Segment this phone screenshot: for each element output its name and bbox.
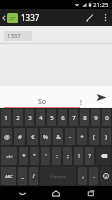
button[interactable]: Send [90, 86, 112, 108]
staticText: 1337 [7, 32, 21, 40]
staticText: 3 [28, 114, 32, 122]
button[interactable]: =\< [1, 147, 17, 165]
staticText: ! [78, 152, 80, 160]
staticText: + [80, 133, 84, 141]
staticText: 4 [39, 114, 43, 122]
staticText: 1337 [21, 12, 40, 23]
button[interactable]: . [89, 167, 98, 185]
staticText: ; [67, 152, 69, 160]
button[interactable]: 1337 [4, 31, 32, 41]
button[interactable]: Navigate up [0, 9, 19, 26]
button[interactable]: 8 [80, 109, 89, 126]
staticText: 6 [61, 114, 65, 122]
staticText: ' [45, 152, 47, 160]
staticText: , [82, 172, 84, 180]
button[interactable]: ) [101, 128, 111, 145]
button[interactable]: @ [1, 128, 12, 145]
staticText: . [93, 172, 95, 180]
button[interactable]: ! [74, 147, 83, 165]
button[interactable]: 7 [69, 109, 78, 126]
staticText: ) [105, 133, 107, 141]
button[interactable]: Attach [81, 9, 99, 26]
button[interactable]: , [78, 167, 87, 185]
button[interactable]: 9 [91, 109, 100, 126]
staticText: 8 [83, 114, 87, 122]
staticText: @ [4, 133, 10, 141]
staticText: - [69, 133, 71, 141]
staticText: 0 [105, 114, 109, 122]
button[interactable]: Home [43, 186, 69, 200]
button[interactable]: ABC [1, 167, 16, 185]
button[interactable]: ? [85, 147, 94, 165]
button[interactable]: / [29, 167, 38, 185]
button[interactable]: : [52, 147, 61, 165]
button[interactable]: + [77, 128, 87, 145]
button[interactable]: 0 [102, 109, 111, 126]
staticText: 1 [4, 114, 8, 122]
staticText: " [33, 152, 36, 160]
button[interactable]: # [14, 128, 25, 145]
button[interactable]: € [27, 128, 38, 145]
button[interactable]: 1 [1, 109, 11, 126]
button[interactable]: ; [63, 147, 72, 165]
button[interactable]: " [30, 147, 39, 165]
staticText: _ [21, 172, 24, 180]
button[interactable]: More options [99, 9, 111, 26]
button[interactable]: Back [9, 186, 35, 200]
button[interactable]: 3 [25, 109, 34, 126]
staticText: * [22, 152, 26, 160]
button[interactable]: * [19, 147, 28, 165]
button[interactable]: 5 [47, 109, 56, 126]
button[interactable]: _ [18, 167, 27, 185]
staticText: : [56, 152, 58, 160]
button[interactable]: & [53, 128, 63, 145]
button[interactable]: % [40, 128, 51, 145]
staticText: 7 [72, 114, 76, 122]
button[interactable]: Français [40, 167, 76, 185]
staticText: 2 [16, 114, 20, 122]
staticText: # [18, 133, 22, 141]
staticText: 9 [94, 114, 98, 122]
button[interactable]: Emoji [100, 167, 111, 185]
button[interactable]: ' [41, 147, 50, 165]
button[interactable]: ( [89, 128, 99, 145]
staticText: % [43, 133, 48, 141]
staticText: ( [93, 133, 95, 141]
staticText: & [56, 133, 61, 141]
staticText: 21:25 [93, 1, 109, 9]
button[interactable]: 4 [36, 109, 45, 126]
staticText: =\< [6, 154, 13, 159]
button[interactable]: Recent apps [78, 186, 104, 200]
button[interactable]: 2 [13, 109, 23, 126]
button[interactable]: Backspace [96, 147, 111, 165]
staticText: ABC [5, 174, 13, 179]
button[interactable]: - [65, 128, 75, 145]
staticText: € [31, 133, 35, 141]
staticText: Français [50, 174, 66, 179]
staticText: 5 [50, 114, 54, 122]
staticText: So [38, 97, 47, 107]
staticText: ? [88, 152, 91, 160]
button[interactable]: 6 [58, 109, 67, 126]
staticText: / [32, 172, 35, 180]
